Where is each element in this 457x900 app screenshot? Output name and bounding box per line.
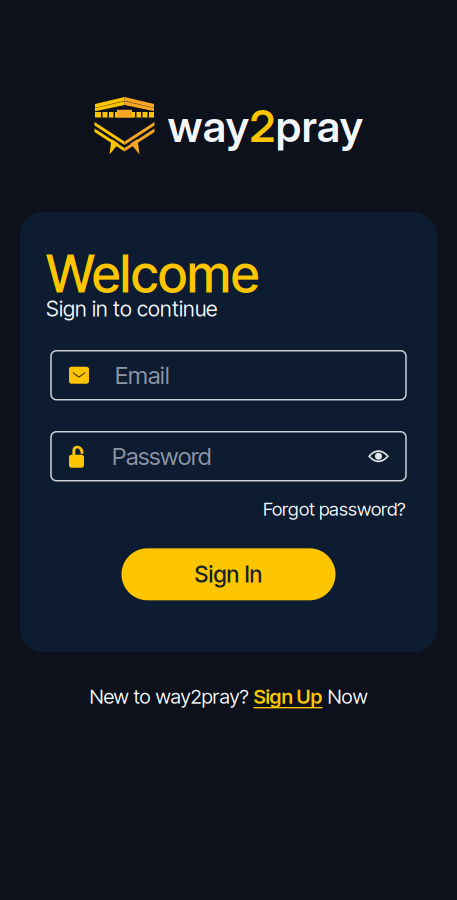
staticText: Sign in to continue (46, 296, 217, 322)
staticText: 2 (249, 99, 275, 153)
staticText: pray (275, 99, 363, 153)
staticText: Now (322, 684, 367, 708)
staticText: way (167, 99, 249, 153)
staticText: Welcome (46, 242, 259, 305)
staticText: Password (112, 442, 211, 471)
staticText: Sign In (194, 561, 262, 588)
button[interactable]: Sign In (121, 548, 335, 600)
staticText: Email (115, 361, 170, 390)
staticText: New to way2pray? (89, 684, 253, 708)
button[interactable]: Forgot password? (46, 498, 411, 520)
staticText: Forgot password? (263, 498, 406, 520)
staticText: Sign Up (253, 684, 322, 708)
button[interactable]: New to way2pray? (89, 684, 367, 708)
